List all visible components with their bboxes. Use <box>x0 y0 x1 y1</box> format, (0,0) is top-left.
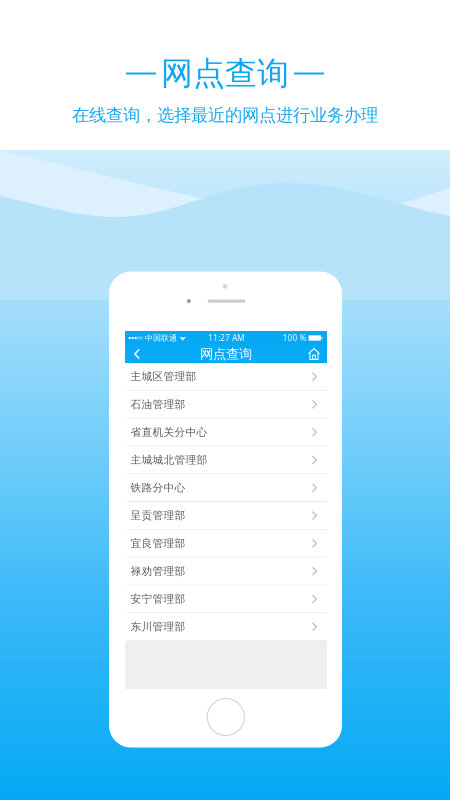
button[interactable]: 主城区管理部 <box>125 363 327 391</box>
button[interactable]: 铁路分中心 <box>125 474 327 502</box>
staticText: 网点查询 <box>200 346 252 362</box>
button[interactable]: 主城城北管理部 <box>125 446 327 474</box>
staticText: 中国联通 <box>145 333 177 343</box>
button[interactable]: 石油管理部 <box>125 391 327 419</box>
staticText: 主城区管理部 <box>130 370 196 383</box>
button[interactable]: 东川管理部 <box>125 613 327 641</box>
staticText: 安宁管理部 <box>130 592 185 605</box>
button[interactable]: 禄劝管理部 <box>125 558 327 585</box>
staticText: 省直机关分中心 <box>130 426 207 439</box>
staticText: 100 % <box>282 333 306 343</box>
button[interactable]: 安宁管理部 <box>125 585 327 613</box>
staticText: 11:27 AM <box>208 333 244 343</box>
staticText: 石油管理部 <box>130 398 185 411</box>
staticText: 宜良管理部 <box>130 537 185 550</box>
button[interactable]: 省直机关分中心 <box>125 419 327 446</box>
staticText: 呈贡管理部 <box>130 509 185 522</box>
button[interactable]: 呈贡管理部 <box>125 502 327 530</box>
staticText: 在线查询，选择最近的网点进行业务办理 <box>72 105 378 126</box>
staticText: 铁路分中心 <box>130 481 185 494</box>
button[interactable]: Home <box>303 345 325 363</box>
staticText: 禄劝管理部 <box>130 565 185 578</box>
staticText: 主城城北管理部 <box>130 453 207 466</box>
staticText: 网点查询 <box>161 54 289 93</box>
staticText: 东川管理部 <box>130 620 185 633</box>
button[interactable]: 宜良管理部 <box>125 530 327 558</box>
button[interactable]: Back <box>126 345 148 363</box>
